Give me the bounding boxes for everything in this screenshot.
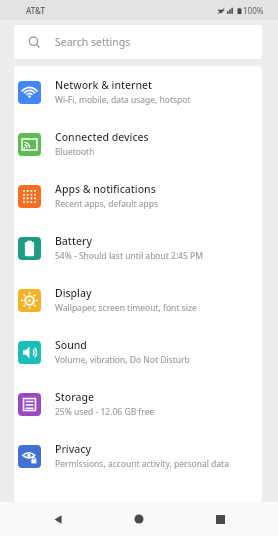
staticText: Volume, vibration, Do Not Disturb xyxy=(55,354,190,366)
staticText: Network & internet xyxy=(55,78,153,92)
staticText: Connected devices xyxy=(55,130,149,144)
button[interactable]: Recent apps xyxy=(197,502,243,536)
button[interactable]: Search settings xyxy=(14,25,262,59)
staticText: Wi-Fi, mobile, data usage, hotspot xyxy=(55,94,191,106)
button[interactable]: Storage xyxy=(14,378,262,430)
button[interactable]: Sound xyxy=(14,326,262,378)
staticText: Storage xyxy=(55,390,94,404)
staticText: Apps & notifications xyxy=(55,182,156,196)
staticText: 100% xyxy=(243,5,264,16)
button[interactable]: Privacy xyxy=(14,430,262,482)
staticText: Display xyxy=(55,286,92,300)
staticText: 25% used - 12.06 GB free xyxy=(55,406,155,418)
staticText: Bluetooth xyxy=(55,146,95,158)
button[interactable]: Network & internet xyxy=(14,66,262,118)
staticText: Battery xyxy=(55,234,92,248)
button[interactable]: Home xyxy=(116,502,162,536)
button[interactable]: Apps & notifications xyxy=(14,170,262,222)
staticText: 54% - Should last until about 2:45 PM xyxy=(55,250,203,262)
button[interactable]: Display xyxy=(14,274,262,326)
staticText: Search settings xyxy=(55,35,131,49)
button[interactable]: Battery xyxy=(14,222,262,274)
staticText: Sound xyxy=(55,338,87,352)
button[interactable]: Connected devices xyxy=(14,118,262,170)
button[interactable]: Back xyxy=(35,502,81,536)
staticText: AT&T xyxy=(26,5,45,16)
staticText: Wallpaper, screen timeout, font size xyxy=(55,302,197,314)
staticText: Recent apps, default apps xyxy=(55,198,159,210)
staticText: Permissions, account activity, personal … xyxy=(55,458,229,470)
staticText: Privacy xyxy=(55,442,91,456)
